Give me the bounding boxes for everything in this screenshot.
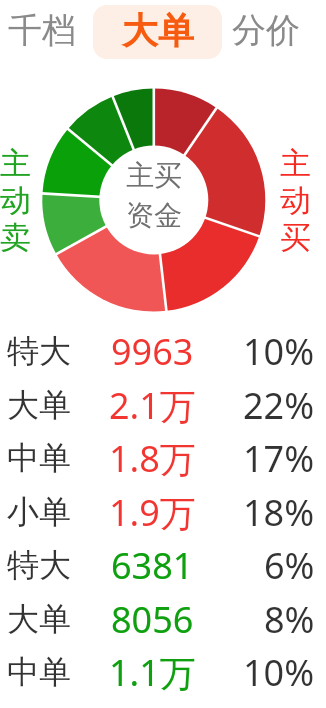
button[interactable]: 小单 <box>0 485 326 539</box>
staticText: 主 动 买 <box>280 144 311 256</box>
staticText: 特大 <box>7 545 71 585</box>
staticText: 主买 资金 <box>126 158 182 233</box>
staticText: 小单 <box>7 492 71 532</box>
staticText: 大单 <box>7 599 71 639</box>
staticText: 10% <box>243 648 315 697</box>
staticText: 大单 <box>122 8 194 53</box>
button[interactable]: 分价 <box>232 0 300 60</box>
staticText: 18% <box>243 488 315 537</box>
staticText: 中单 <box>7 652 71 692</box>
button[interactable]: 特大 <box>0 538 326 592</box>
staticText: 1.9万 <box>109 488 196 537</box>
staticText: 1.8万 <box>109 434 196 483</box>
staticText: 17% <box>243 434 315 483</box>
button[interactable]: 千档 <box>8 0 76 60</box>
staticText: 10% <box>243 327 315 376</box>
staticText: 8056 <box>111 595 194 644</box>
staticText: 特大 <box>7 331 71 371</box>
staticText: 中单 <box>7 438 71 478</box>
staticText: 22% <box>243 381 315 430</box>
button[interactable]: 大单 <box>0 378 326 432</box>
staticText: 9963 <box>111 327 194 376</box>
staticText: 主 动 卖 <box>0 144 30 256</box>
button[interactable]: 中单 <box>0 645 326 699</box>
staticText: 6381 <box>111 541 194 590</box>
staticText: 6% <box>264 541 315 590</box>
staticText: 分价 <box>232 9 300 52</box>
button[interactable]: 大单 <box>93 5 222 59</box>
button[interactable]: 中单 <box>0 431 326 485</box>
staticText: 大单 <box>7 385 71 425</box>
button[interactable]: 大单 <box>0 592 326 646</box>
staticText: 2.1万 <box>109 381 196 430</box>
staticText: 1.1万 <box>109 648 196 697</box>
staticText: 8% <box>264 595 315 644</box>
button[interactable]: 特大 <box>0 324 326 378</box>
staticText: 千档 <box>8 9 76 52</box>
